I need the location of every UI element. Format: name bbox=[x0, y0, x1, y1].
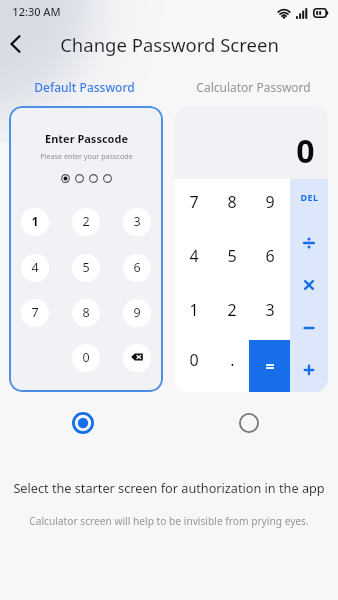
button[interactable]: Calculator Password bbox=[169, 74, 338, 100]
button[interactable]: Calculator password bbox=[234, 408, 264, 438]
button[interactable]: 2 bbox=[72, 208, 100, 236]
staticText: 4 bbox=[189, 245, 199, 267]
staticText: = bbox=[265, 355, 275, 377]
staticText: Enter Passcode bbox=[45, 131, 128, 146]
button[interactable]: Add bbox=[290, 349, 328, 392]
button[interactable]: Default password selected bbox=[68, 408, 98, 438]
button[interactable]: 7 bbox=[175, 175, 213, 228]
button[interactable]: . bbox=[213, 333, 251, 386]
button[interactable]: 0 bbox=[175, 333, 213, 386]
staticText: Change Password Screen bbox=[60, 32, 279, 57]
button[interactable]: 5 bbox=[213, 229, 251, 282]
button[interactable]: 2 bbox=[213, 283, 251, 336]
button[interactable]: = bbox=[249, 340, 290, 392]
button[interactable]: 8 bbox=[213, 175, 251, 228]
staticText: Calculator Password bbox=[196, 79, 311, 95]
staticText: 0 bbox=[189, 349, 199, 371]
button[interactable]: 4 bbox=[21, 254, 49, 282]
staticText: . bbox=[230, 349, 235, 371]
staticText: 0 bbox=[296, 129, 315, 173]
staticText: DEL bbox=[300, 191, 319, 203]
button[interactable]: 0 bbox=[72, 344, 100, 372]
button[interactable]: Subtract bbox=[290, 307, 328, 350]
button[interactable]: 3 bbox=[251, 283, 289, 336]
staticText: 2 bbox=[227, 299, 237, 321]
staticText: 7 bbox=[31, 304, 39, 321]
staticText: 6 bbox=[133, 259, 141, 276]
button[interactable]: Back bbox=[0, 29, 30, 59]
staticText: Default Password bbox=[34, 79, 135, 95]
staticText: 5 bbox=[227, 245, 237, 267]
button[interactable]: 1 bbox=[175, 283, 213, 336]
button[interactable]: Enter Passcode bbox=[9, 106, 163, 392]
staticText: 9 bbox=[265, 191, 275, 213]
button[interactable]: 4 bbox=[175, 229, 213, 282]
staticText: 3 bbox=[265, 299, 275, 321]
staticText: 8 bbox=[227, 191, 237, 213]
button[interactable]: 6 bbox=[123, 254, 151, 282]
staticText: Please enter your passcode bbox=[40, 151, 133, 161]
button[interactable]: Multiply bbox=[290, 264, 328, 307]
staticText: Select the starter screen for authorizat… bbox=[13, 479, 325, 496]
staticText: 1 bbox=[189, 299, 199, 321]
staticText: 9 bbox=[133, 304, 141, 321]
button[interactable]: 5 bbox=[72, 254, 100, 282]
button[interactable]: 9 bbox=[123, 299, 151, 327]
staticText: 1 bbox=[31, 213, 39, 230]
staticText: 5 bbox=[82, 259, 90, 276]
staticText: 12:30 AM bbox=[12, 4, 61, 19]
button[interactable]: Default Password bbox=[0, 74, 169, 100]
staticText: 4 bbox=[31, 259, 39, 276]
staticText: 2 bbox=[82, 213, 90, 230]
button[interactable]: 0 bbox=[175, 106, 328, 392]
button[interactable]: Divide bbox=[290, 222, 328, 265]
staticText: 0 bbox=[82, 349, 90, 366]
button[interactable]: 9 bbox=[251, 175, 289, 228]
staticText: 6 bbox=[265, 245, 275, 267]
button[interactable]: Backspace bbox=[123, 344, 151, 372]
staticText: 3 bbox=[133, 213, 141, 230]
button[interactable]: 8 bbox=[72, 299, 100, 327]
staticText: 8 bbox=[82, 304, 90, 321]
button[interactable]: Delete bbox=[290, 179, 328, 222]
staticText: Calculator screen will help to be invisi… bbox=[29, 514, 309, 528]
button[interactable]: 6 bbox=[251, 229, 289, 282]
button[interactable]: 1 bbox=[21, 208, 49, 236]
staticText: 7 bbox=[189, 191, 199, 213]
button[interactable]: 7 bbox=[21, 299, 49, 327]
button[interactable]: 3 bbox=[123, 208, 151, 236]
